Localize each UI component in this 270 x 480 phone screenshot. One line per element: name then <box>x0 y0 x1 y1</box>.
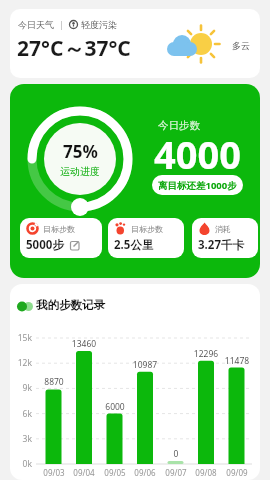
staticText: 3k <box>10 433 32 445</box>
staticText: 0 <box>156 448 196 460</box>
button[interactable]: 目标步数 <box>108 218 184 258</box>
staticText: 轻度污染 <box>81 19 117 30</box>
staticText: 6k <box>10 408 32 420</box>
staticText: 12k <box>10 357 32 369</box>
staticText: 5000步 <box>26 237 64 253</box>
staticText: 消耗 <box>215 224 231 234</box>
staticText: | <box>59 18 64 30</box>
staticText: 09/06 <box>130 467 160 478</box>
staticText: 11478 <box>217 355 257 367</box>
staticText: 6000 <box>95 401 135 413</box>
staticText: 多云 <box>232 40 250 51</box>
staticText: 09/05 <box>100 467 130 478</box>
staticText: 目标步数 <box>131 224 163 234</box>
staticText: 12296 <box>186 348 226 360</box>
button[interactable]: 今日天气 <box>10 9 260 78</box>
staticText: 09/09 <box>222 467 252 478</box>
staticText: 离目标还差1000步 <box>158 179 237 192</box>
staticText: 10987 <box>125 359 165 371</box>
staticText: 75% <box>63 140 98 163</box>
staticText: 3.27千卡 <box>198 237 244 253</box>
staticText: 今日天气 <box>18 19 54 30</box>
button[interactable]: 消耗 <box>192 218 258 258</box>
button[interactable]: 离目标还差1000步 <box>152 175 243 195</box>
button[interactable]: 75% <box>10 84 260 278</box>
staticText: 今日步数 <box>158 119 200 132</box>
staticText: 0k <box>10 458 32 470</box>
staticText: 4000 <box>154 128 241 180</box>
button[interactable]: 我的步数记录 <box>10 284 260 480</box>
staticText: 09/07 <box>161 467 191 478</box>
staticText: 15k <box>10 332 32 344</box>
staticText: 2.5公里 <box>114 237 154 253</box>
staticText: 目标步数 <box>43 224 75 234</box>
staticText: 13460 <box>64 338 104 350</box>
staticText: 09/03 <box>39 467 69 478</box>
staticText: 27°C～37°C <box>17 34 131 63</box>
staticText: 09/04 <box>69 467 99 478</box>
staticText: 8870 <box>34 376 74 388</box>
button[interactable]: 目标步数 <box>20 218 102 258</box>
staticText: 09/08 <box>191 467 221 478</box>
staticText: 9k <box>10 382 32 394</box>
staticText: 我的步数记录 <box>36 298 105 312</box>
staticText: 运动进度 <box>60 165 100 178</box>
